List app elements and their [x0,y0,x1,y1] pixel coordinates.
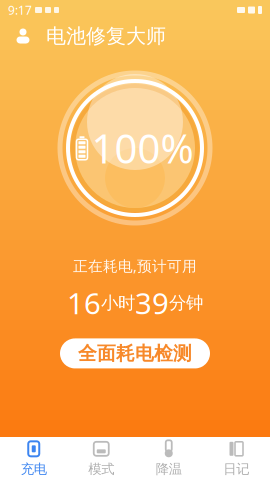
staticText: 分钟 [169,292,203,314]
staticText: 电池修复大师 [46,24,166,48]
staticText: 39 [135,283,169,322]
staticText: 100% [91,121,193,174]
button[interactable]: Account [10,21,36,51]
staticText: 充电 [21,461,47,477]
staticText: 日记 [223,461,249,477]
button[interactable]: 模式 [67,437,135,480]
staticText: 全面耗电检测 [78,342,192,365]
button[interactable]: 全面耗电检测 [60,338,210,368]
staticText: 模式 [88,461,114,477]
button[interactable]: 日记 [202,437,270,480]
staticText: 9:17 [8,2,32,18]
staticText: 16 [67,283,101,322]
staticText: 降温 [156,461,182,477]
staticText: 正在耗电,预计可用 [73,256,197,275]
button[interactable]: 充电 [0,437,67,480]
button[interactable]: 降温 [135,437,202,480]
staticText: 小时 [101,292,135,314]
